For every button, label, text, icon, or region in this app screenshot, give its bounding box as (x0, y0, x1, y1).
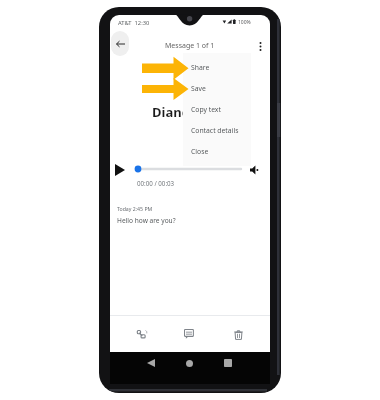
button[interactable]: Save (183, 78, 251, 99)
button[interactable]: Close (183, 141, 251, 162)
button[interactable]: Share (183, 57, 251, 78)
button[interactable]: Call (132, 324, 152, 344)
button[interactable]: More options (255, 39, 265, 53)
staticText: Diane (152, 103, 190, 121)
staticText: Message 1 of 1 (165, 41, 215, 51)
staticText: Share (191, 63, 210, 72)
staticText: Hello how are you? (117, 216, 176, 225)
button[interactable]: Delete (228, 325, 248, 345)
staticText: AT&T 12:30 (118, 19, 150, 27)
button[interactable]: Message (179, 324, 199, 344)
staticText: Close (191, 147, 209, 156)
button[interactable]: Back (111, 31, 129, 56)
staticText: 00:00 / 00:03 (137, 179, 175, 187)
staticText: Today 2:45 PM (117, 205, 153, 212)
button[interactable]: Contact details (183, 120, 251, 141)
staticText: Contact details (191, 126, 239, 135)
staticText: Save (191, 84, 206, 93)
button[interactable]: Volume (248, 162, 263, 177)
button[interactable]: Play (112, 162, 128, 178)
button[interactable]: Recents (218, 353, 238, 373)
button[interactable]: Copy text (183, 99, 251, 120)
button[interactable]: Home (179, 353, 199, 373)
staticText: 100% (238, 19, 251, 26)
staticText: Copy text (191, 105, 221, 114)
button[interactable]: Back (141, 353, 161, 373)
